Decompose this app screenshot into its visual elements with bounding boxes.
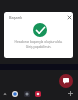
- staticText: Başarılı: [9, 15, 23, 20]
- button[interactable]: Messages: [59, 74, 73, 88]
- staticText: Hesabınız başarıyla oluşturuldu. Giriş y…: [8, 40, 69, 49]
- button[interactable]: Camera: [22, 89, 32, 99]
- button[interactable]: Photos: [33, 89, 43, 99]
- button[interactable]: Add: [66, 89, 75, 98]
- button[interactable]: Close: [65, 13, 73, 21]
- button[interactable]: Navigation: [0, 89, 10, 99]
- button[interactable]: Browser: [10, 89, 20, 99]
